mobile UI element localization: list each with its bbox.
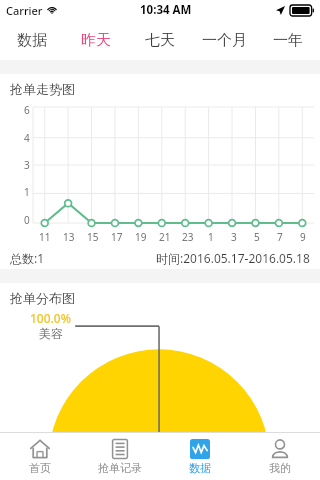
staticText: 我的 bbox=[269, 461, 291, 475]
staticText: 6 bbox=[24, 103, 30, 117]
button[interactable]: Home bbox=[0, 433, 80, 480]
staticText: 抢单记录 bbox=[98, 461, 142, 475]
staticText: 10:34 AM bbox=[140, 2, 192, 18]
staticText: 首页 bbox=[29, 461, 51, 475]
button[interactable]: 昨天 bbox=[64, 20, 128, 60]
staticText: 21 bbox=[159, 230, 171, 244]
staticText: 100.0% bbox=[30, 310, 71, 326]
staticText: 9 bbox=[300, 230, 306, 244]
staticText: 23 bbox=[182, 230, 194, 244]
staticText: 1 bbox=[208, 230, 214, 244]
button[interactable]: 七天 bbox=[128, 20, 192, 60]
staticText: 一个月 bbox=[202, 31, 247, 50]
staticText: 5 bbox=[254, 230, 260, 244]
button[interactable]: 一个月 bbox=[192, 20, 256, 60]
button[interactable]: 数据 bbox=[0, 20, 64, 60]
staticText: 数据 bbox=[189, 461, 211, 475]
staticText: 13 bbox=[63, 230, 75, 244]
staticText: 总数:1 bbox=[10, 250, 45, 266]
button[interactable]: Records bbox=[80, 433, 160, 480]
button[interactable]: Profile bbox=[240, 433, 320, 480]
staticText: 抢单走势图 bbox=[10, 81, 75, 97]
staticText: 七天 bbox=[145, 31, 175, 50]
button[interactable]: Data bbox=[160, 433, 240, 480]
staticText: 17 bbox=[111, 230, 123, 244]
staticText: 1 bbox=[24, 185, 30, 199]
staticText: 时间:2016.05.17-2016.05.18 bbox=[156, 250, 310, 266]
staticText: 11 bbox=[39, 230, 51, 244]
staticText: 数据 bbox=[17, 31, 47, 50]
staticText: 一年 bbox=[273, 31, 303, 50]
staticText: 抢单分布图 bbox=[10, 290, 75, 306]
staticText: 15 bbox=[87, 230, 99, 244]
staticText: 美容 bbox=[39, 326, 63, 341]
staticText: 4 bbox=[24, 131, 30, 145]
staticText: 0 bbox=[24, 213, 30, 227]
button[interactable]: 一年 bbox=[256, 20, 320, 60]
staticText: 19 bbox=[135, 230, 147, 244]
staticText: 3 bbox=[24, 158, 30, 172]
staticText: 3 bbox=[231, 230, 237, 244]
staticText: 7 bbox=[277, 230, 283, 244]
staticText: Carrier bbox=[6, 3, 43, 18]
staticText: 昨天 bbox=[81, 31, 111, 50]
